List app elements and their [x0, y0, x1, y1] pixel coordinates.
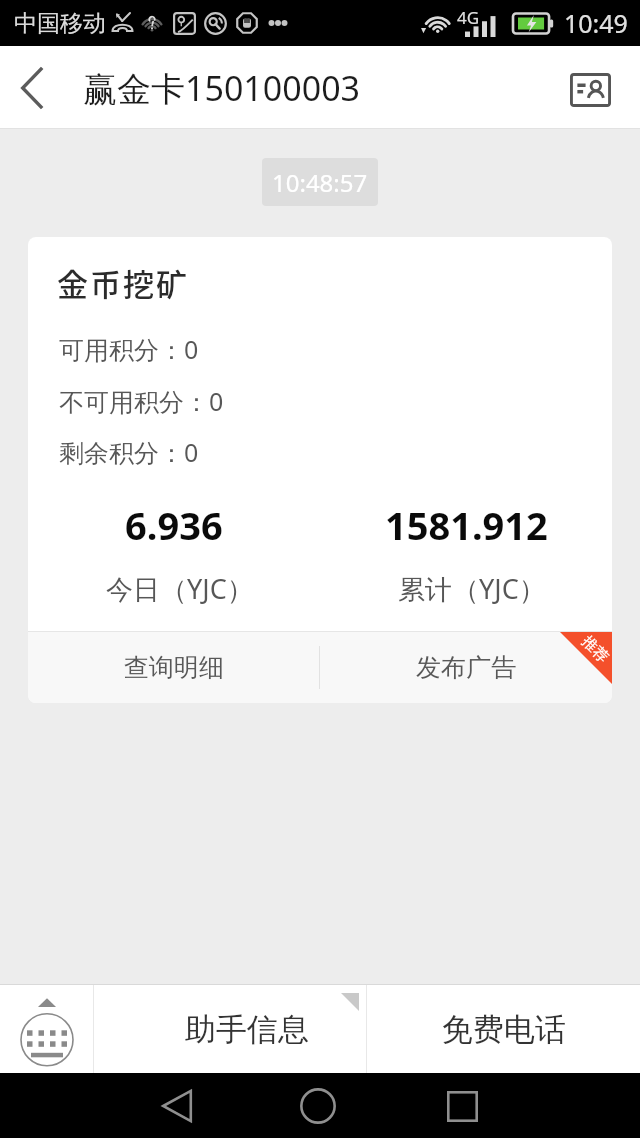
staticText: 免费电话	[442, 1010, 566, 1049]
staticText: 6.936	[125, 499, 223, 551]
staticText: 金币挖矿	[57, 260, 189, 305]
button[interactable]: Back	[147, 1076, 207, 1136]
staticText: 中国移动	[14, 9, 106, 38]
staticText: 10:48:57	[272, 166, 368, 199]
staticText: 10:49	[564, 6, 628, 40]
button[interactable]: 助手信息	[94, 985, 366, 1073]
button[interactable]: Keyboard	[0, 985, 93, 1073]
staticText: 发布广告	[416, 652, 516, 683]
button[interactable]: 发布广告	[320, 632, 612, 703]
staticText: 1581.912	[385, 499, 548, 551]
staticText: 累计（YJC）	[398, 570, 546, 607]
staticText: 今日（YJC）	[106, 570, 254, 607]
staticText: 查询明细	[124, 652, 224, 683]
button[interactable]: Recent apps	[432, 1076, 492, 1136]
button[interactable]: 查询明细	[28, 632, 319, 703]
staticText: 4G	[457, 6, 480, 29]
staticText: 助手信息	[185, 1010, 309, 1049]
staticText: 赢金卡150100003	[83, 65, 361, 111]
button[interactable]: 免费电话	[367, 985, 640, 1073]
button[interactable]: Contact card	[540, 46, 640, 129]
staticText: 剩余积分：0	[59, 435, 199, 469]
staticText: 可用积分：0	[59, 332, 199, 366]
button[interactable]: Back	[0, 46, 64, 129]
staticText: 推荐	[578, 632, 612, 667]
button[interactable]: Home	[288, 1076, 348, 1136]
staticText: 不可用积分：0	[59, 384, 224, 418]
